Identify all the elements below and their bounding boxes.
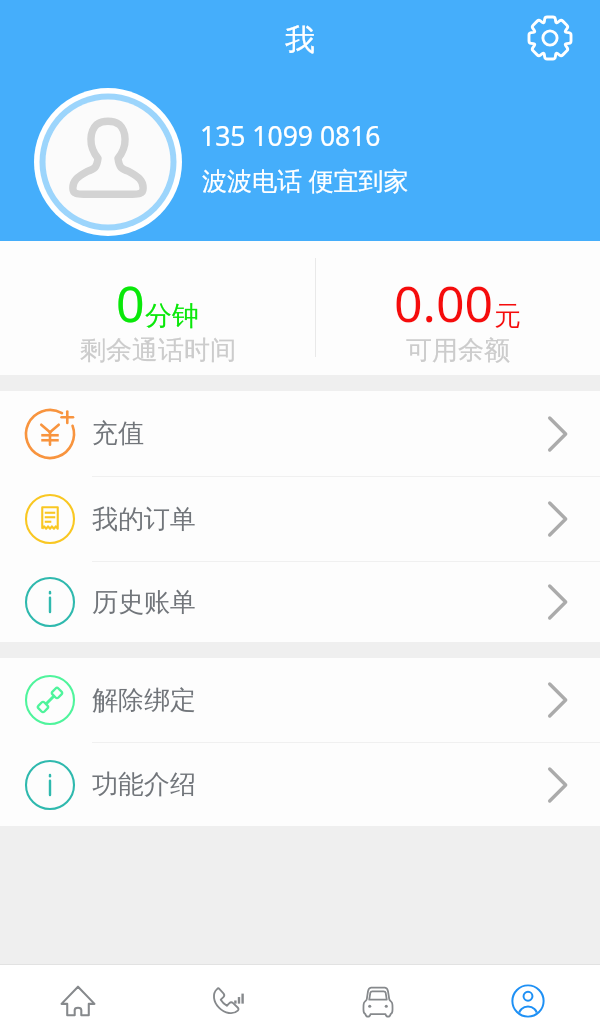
staticText: 剩余通话时间 — [80, 334, 236, 367]
button[interactable]: Home — [0, 965, 150, 1022]
button[interactable]: 我的订单 — [0, 477, 600, 561]
staticText: 元 — [494, 299, 521, 333]
staticText: 0 — [116, 269, 145, 337]
button[interactable]: Settings — [522, 10, 578, 66]
staticText: 我 — [285, 21, 315, 59]
button[interactable]: 功能介绍 — [0, 743, 600, 826]
staticText: 分钟 — [145, 299, 199, 333]
staticText: 可用余额 — [406, 334, 510, 367]
staticText: 我的订单 — [92, 503, 196, 536]
staticText: 充值 — [92, 417, 144, 450]
staticText: 波波电话 便宜到家 — [202, 163, 409, 197]
staticText: 历史账单 — [92, 586, 196, 619]
button[interactable]: Profile — [450, 965, 600, 1022]
button[interactable]: 解除绑定 — [0, 658, 600, 742]
button[interactable]: 充值 — [0, 391, 600, 476]
button[interactable]: Call — [150, 965, 300, 1022]
staticText: 135 1099 0816 — [200, 118, 381, 154]
staticText: 0.00 — [394, 269, 494, 337]
button[interactable]: Car — [300, 965, 450, 1022]
staticText: 功能介绍 — [92, 768, 196, 801]
button[interactable]: 历史账单 — [0, 562, 600, 642]
staticText: 解除绑定 — [92, 684, 196, 717]
